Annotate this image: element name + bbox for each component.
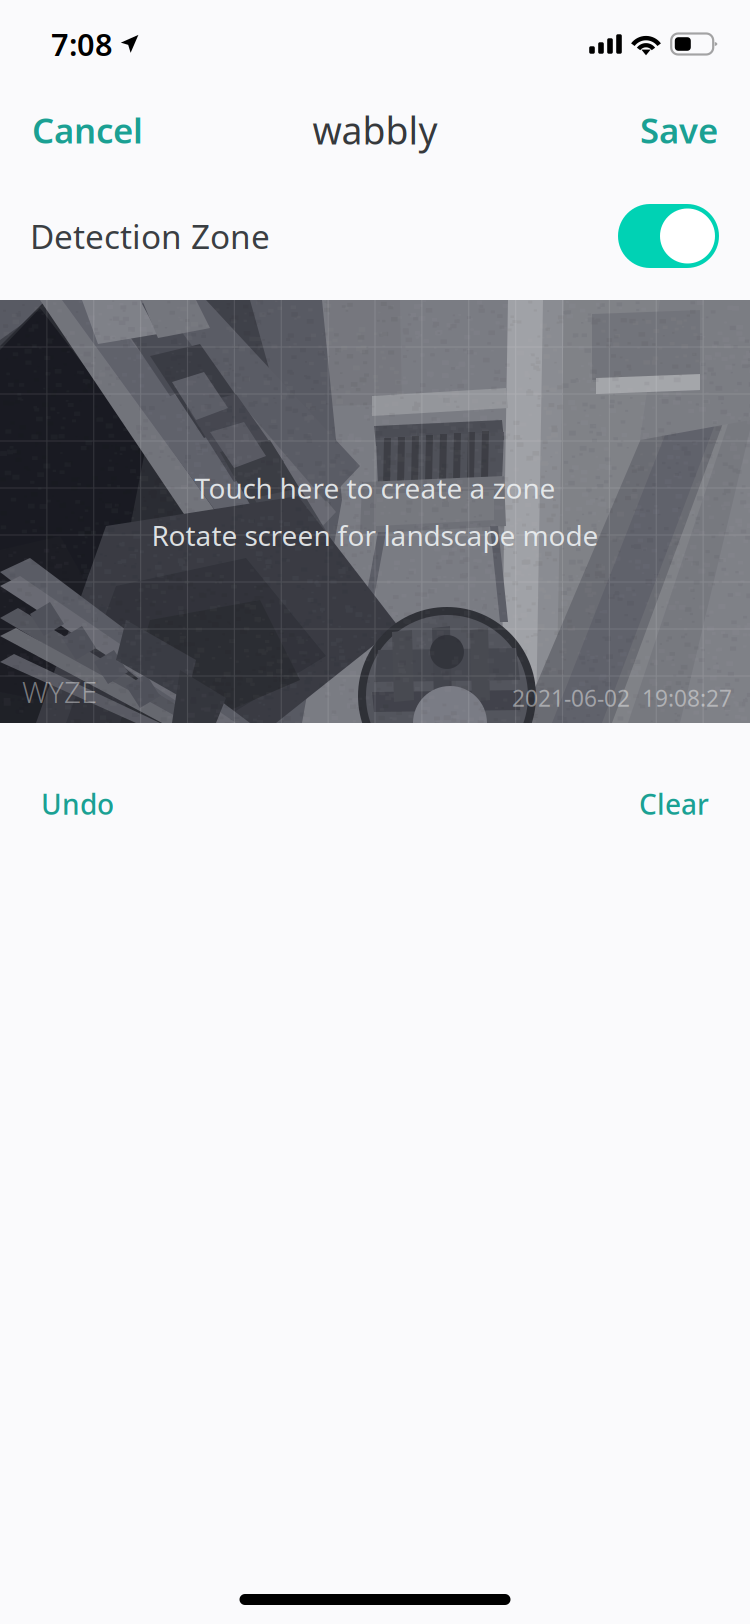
staticText: Clear <box>639 785 709 823</box>
staticText: Cancel <box>32 107 143 153</box>
staticText: Undo <box>41 785 114 823</box>
button[interactable]: Save <box>608 90 750 170</box>
button[interactable]: Undo <box>30 768 125 840</box>
staticText: Detection Zone <box>30 214 270 258</box>
staticText: Save <box>640 107 718 153</box>
button[interactable]: Detection Zone <box>618 204 719 268</box>
staticText: WYZE <box>22 672 97 711</box>
staticText: 2021-06-02 19:08:27 <box>512 683 732 713</box>
staticText: wabbly <box>312 105 437 155</box>
staticText: Touch here to create a zone <box>194 469 555 506</box>
staticText: 7:08 <box>51 24 113 64</box>
button[interactable]: Clear <box>628 768 720 840</box>
staticText: Rotate screen for landscape mode <box>151 516 598 554</box>
button[interactable]: Cancel <box>0 90 175 170</box>
